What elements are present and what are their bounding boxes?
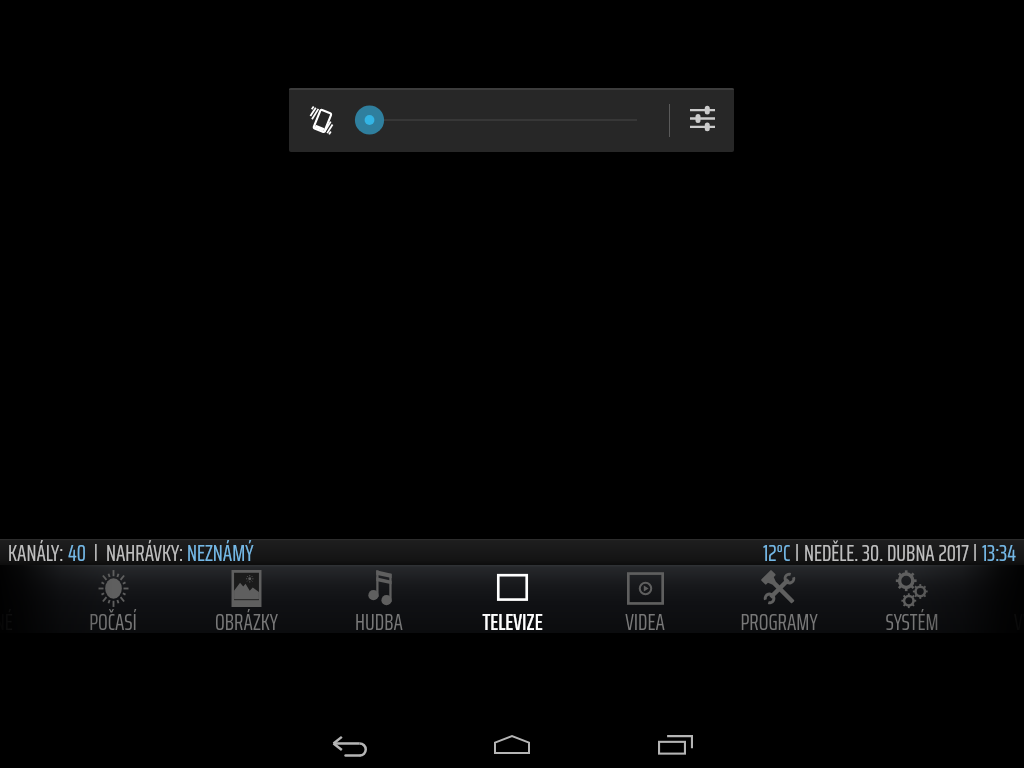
button[interactable]: VIDEA [579, 565, 711, 633]
staticText: | [86, 535, 106, 561]
staticText: HUDBA [355, 604, 403, 640]
staticText: NEZNÁMÝ [187, 535, 254, 561]
button[interactable]: Auto rotate [295, 94, 347, 146]
staticText: SYSTÉM [885, 604, 939, 640]
button[interactable]: OBLÍBENÉ [0, 565, 46, 633]
button[interactable]: OBRÁZKY [180, 565, 312, 633]
staticText: NEDĚLE, 30. DUBNA 2017 [804, 535, 969, 561]
button[interactable]: Settings [678, 94, 726, 142]
staticText: 12°C [763, 535, 791, 561]
staticText: VIDEA [625, 604, 665, 640]
staticText: | [791, 535, 804, 561]
staticText: 13:34 [982, 535, 1017, 561]
staticText: POČASÍ [89, 604, 137, 640]
button[interactable]: Back [290, 724, 410, 768]
button[interactable]: PROGRAMY [713, 565, 845, 633]
button[interactable]: Home [452, 721, 572, 767]
button[interactable]: Recent apps [615, 721, 735, 767]
staticText: OBRÁZKY [215, 604, 278, 640]
staticText: 40 [68, 535, 86, 561]
staticText: NAHRÁVKY: [106, 535, 187, 561]
button[interactable]: Brightness [349, 94, 649, 146]
button[interactable]: SYSTÉM [846, 565, 978, 633]
button[interactable]: HUDBA [313, 565, 445, 633]
button[interactable]: VYPNOUT [979, 565, 1024, 633]
button[interactable]: TELEVIZE [446, 565, 578, 633]
staticText: KANÁLY: [8, 535, 68, 561]
staticText: | [969, 535, 982, 561]
staticText: PROGRAMY [740, 604, 818, 640]
staticText: OBLÍBENÉ [0, 604, 13, 640]
button[interactable]: POČASÍ [47, 565, 179, 633]
staticText: TELEVIZE [482, 604, 543, 640]
